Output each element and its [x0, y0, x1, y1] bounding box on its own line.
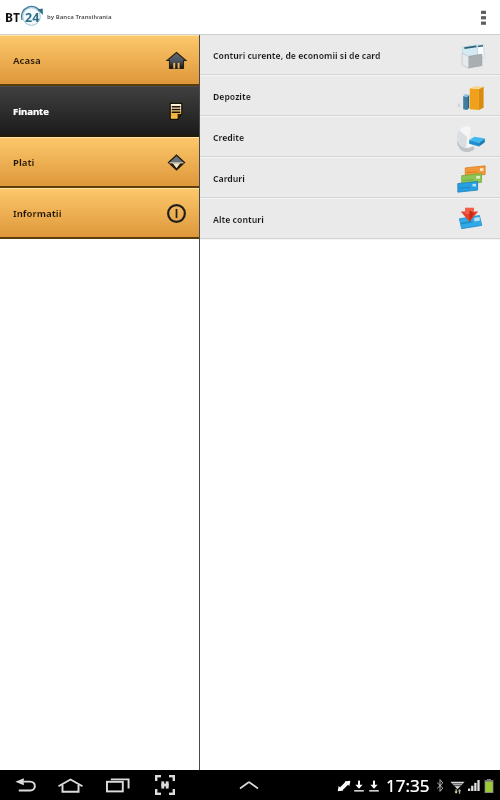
staticText: Plati — [13, 156, 35, 169]
button[interactable]: Credite — [200, 117, 500, 158]
staticText: Alte conturi — [213, 214, 264, 226]
button[interactable]: Home — [55, 770, 85, 800]
staticText: by Banca Transilvania — [47, 13, 112, 21]
staticText: Conturi curente, de economii si de card — [213, 50, 381, 62]
button[interactable]: More options — [471, 5, 496, 30]
staticText: Depozite — [213, 91, 251, 103]
staticText: Carduri — [213, 173, 245, 185]
staticText: Finante — [13, 105, 49, 118]
button[interactable]: Depozite — [200, 76, 500, 117]
staticText: Acasa — [13, 54, 41, 67]
button[interactable]: Alte conturi — [200, 199, 500, 240]
button[interactable]: Finante — [0, 86, 199, 137]
staticText: Informatii — [13, 207, 62, 220]
button[interactable]: Plati — [0, 137, 199, 188]
staticText: 24 — [25, 9, 40, 26]
button[interactable]: Recent apps — [103, 770, 133, 800]
button[interactable]: Acasa — [0, 35, 199, 86]
staticText: BT — [5, 9, 21, 25]
button[interactable]: Carduri — [200, 158, 500, 199]
button[interactable]: Conturi curente, de economii si de card — [200, 35, 500, 76]
staticText: 17:35 — [386, 774, 430, 797]
button[interactable]: Back — [10, 770, 40, 800]
button[interactable]: Informatii — [0, 188, 199, 239]
button[interactable]: Screenshot — [150, 770, 180, 800]
staticText: Credite — [213, 132, 245, 144]
button[interactable]: Show notifications — [234, 770, 264, 800]
